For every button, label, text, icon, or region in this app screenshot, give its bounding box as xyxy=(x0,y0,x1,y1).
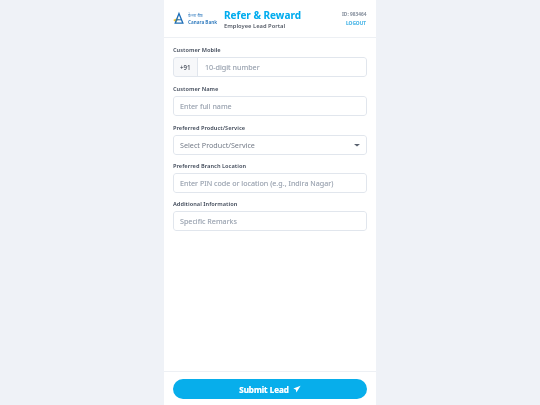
button[interactable]: LOGOUT xyxy=(346,20,367,27)
staticText: Specific Remarks xyxy=(180,216,237,226)
staticText: Submit Lead xyxy=(239,384,289,395)
staticText: Additional Information xyxy=(173,200,238,208)
staticText: केनरा बैंक xyxy=(188,13,204,19)
button[interactable]: Submit Lead xyxy=(173,379,367,399)
staticText: Select Product/Service xyxy=(180,140,354,150)
button[interactable]: +91 xyxy=(173,57,367,77)
button[interactable]: Enter PIN code or location (e.g., Indira… xyxy=(173,173,367,193)
button[interactable]: Specific Remarks xyxy=(173,211,367,231)
staticText: Enter PIN code or location (e.g., Indira… xyxy=(180,178,334,188)
staticText: Canara Bank xyxy=(188,19,217,25)
staticText: +91 xyxy=(180,63,191,71)
button[interactable]: Select Product/Service xyxy=(173,135,367,155)
staticText: 10-digit number xyxy=(205,62,260,72)
staticText: Enter full name xyxy=(180,101,232,111)
staticText: Refer & Reward xyxy=(224,8,302,22)
staticText: Customer Name xyxy=(173,85,219,93)
staticText: Preferred Branch Location xyxy=(173,162,247,170)
button[interactable]: Enter full name xyxy=(173,96,367,116)
staticText: ID: 983464 xyxy=(342,11,367,18)
staticText: Preferred Product/Service xyxy=(173,124,246,132)
staticText: LOGOUT xyxy=(346,20,367,27)
staticText: Employee Lead Portal xyxy=(224,22,286,30)
staticText: Customer Mobile xyxy=(173,46,221,54)
